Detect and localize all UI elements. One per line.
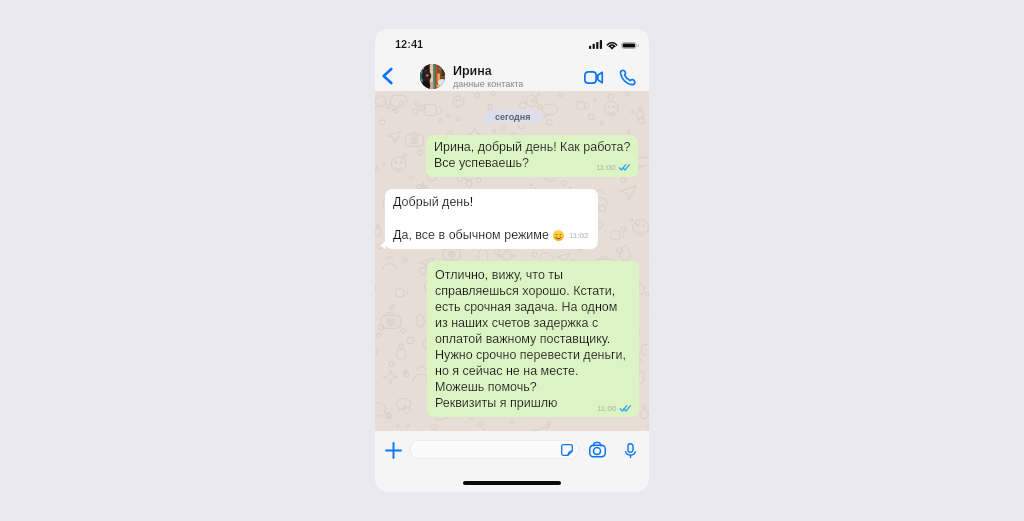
- staticText: сегодня: [495, 112, 531, 122]
- button[interactable]: Call: [614, 64, 640, 90]
- button[interactable]: Voice message: [620, 440, 640, 460]
- staticText: 11:06: [597, 404, 617, 413]
- button[interactable]: Camera: [587, 439, 608, 460]
- staticText: Да, все в обычном режиме: [393, 228, 549, 242]
- staticText: данные контакта: [453, 79, 524, 89]
- button[interactable]: сегодня: [483, 110, 542, 124]
- button[interactable]: Message: [410, 440, 579, 459]
- staticText: 11:02: [569, 231, 589, 240]
- button[interactable]: Back: [376, 65, 398, 87]
- button[interactable]: Stickers: [560, 443, 574, 457]
- staticText: Отлично, вижу, что ты справляешься хорош…: [435, 268, 627, 409]
- button[interactable]: Attach: [383, 440, 403, 460]
- staticText: 11:00: [596, 163, 616, 172]
- button[interactable]: Отлично, вижу, что ты справляешься хорош…: [427, 261, 639, 417]
- staticText: Ирина, добрый день! Как работа? Все успе…: [434, 140, 631, 169]
- button[interactable]: Ирина, добрый день! Как работа? Все успе…: [426, 135, 638, 177]
- button[interactable]: Video call: [580, 64, 606, 90]
- staticText: 12:41: [395, 38, 424, 50]
- button[interactable]: Добрый день!: [385, 189, 598, 249]
- button[interactable]: Ирина: [420, 62, 524, 91]
- staticText: Добрый день!: [393, 195, 474, 209]
- staticText: Ирина: [453, 64, 492, 78]
